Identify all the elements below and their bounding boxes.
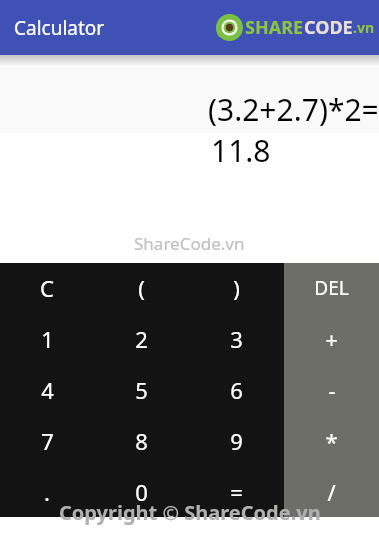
button[interactable]: 2 [94,313,189,364]
button[interactable]: ( [94,263,189,313]
staticText: (3.2+2.7)*2= [208,89,379,130]
staticText: 2 [135,324,148,354]
staticText: ShareCode.vn [134,232,245,255]
button[interactable]: . [0,466,94,517]
staticText: 5 [135,375,148,405]
staticText: 11.8 [211,130,271,171]
button[interactable]: 5 [94,364,189,415]
button[interactable]: 9 [189,415,284,466]
staticText: C [40,273,54,303]
staticText: 1 [41,324,54,354]
button[interactable]: 0 [94,466,189,517]
staticText: ( [138,273,145,303]
staticText: * [325,426,338,456]
button[interactable]: + [284,313,379,364]
button[interactable]: - [284,364,379,415]
staticText: 6 [230,375,243,405]
staticText: 7 [41,426,54,456]
button[interactable]: 1 [0,313,94,364]
staticText: . [44,477,50,507]
staticText: 8 [135,426,148,456]
button[interactable]: 8 [94,415,189,466]
staticText: 3 [230,324,243,354]
staticText: CODE [304,15,353,40]
staticText: DEL [314,275,349,301]
staticText: 9 [230,426,243,456]
staticText: Calculator [14,15,105,41]
staticText: .vn [353,18,375,37]
staticText: SHARE [245,15,304,40]
staticText: 4 [41,375,54,405]
staticText: ) [233,273,240,303]
button[interactable]: = [189,466,284,517]
button[interactable]: 3 [189,313,284,364]
staticText: - [328,375,336,405]
button[interactable]: 4 [0,364,94,415]
staticText: = [230,477,243,507]
staticText: + [325,324,338,354]
button[interactable]: / [284,466,379,517]
button[interactable]: ) [189,263,284,313]
button[interactable]: * [284,415,379,466]
button[interactable]: Delete [284,263,379,313]
button[interactable]: C [0,263,94,313]
staticText: 0 [135,477,148,507]
staticText: Copyright © ShareCode.vn [59,499,321,526]
staticText: / [327,477,336,507]
button[interactable]: 6 [189,364,284,415]
button[interactable]: 7 [0,415,94,466]
